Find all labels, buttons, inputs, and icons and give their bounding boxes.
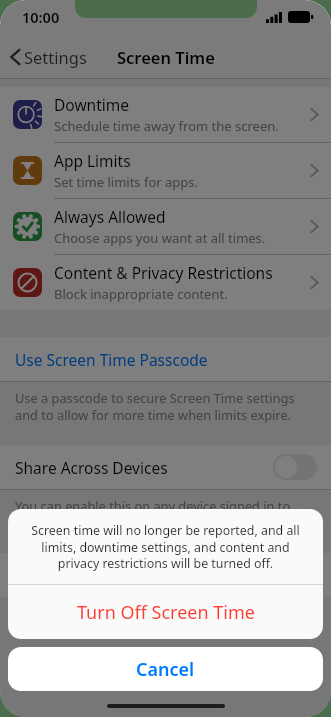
button[interactable]: Use Screen Time Passcode xyxy=(0,337,331,381)
button[interactable]: Turn Off Screen Time xyxy=(0,553,331,597)
button[interactable]: Cancel xyxy=(8,647,323,691)
staticText: Content & Privacy Restrictions xyxy=(54,262,273,283)
button[interactable]: Always Allowed xyxy=(0,199,331,255)
staticText: Cancel xyxy=(136,657,195,682)
staticText: Screen time will no longer be reported, … xyxy=(24,522,307,571)
staticText: Turn Off Screen Time xyxy=(77,600,255,625)
staticText: Set time limits for apps. xyxy=(54,173,199,191)
staticText: Schedule time away from the screen. xyxy=(54,117,279,135)
staticText: Turn Off Screen Time xyxy=(15,565,169,586)
button[interactable]: App Limits xyxy=(0,143,331,199)
staticText: Use Screen Time Passcode xyxy=(15,349,208,370)
button[interactable]: Content & Privacy Restrictions xyxy=(0,255,331,310)
button[interactable]: Settings xyxy=(7,42,90,72)
staticText: App Limits xyxy=(54,150,131,171)
staticText: Settings xyxy=(24,46,87,68)
staticText: You can enable this on any device signed… xyxy=(15,497,316,531)
button[interactable]: Downtime xyxy=(0,87,331,143)
other: Notch xyxy=(75,0,257,18)
button[interactable]: Share Across Devices xyxy=(0,445,331,489)
staticText: Use a passcode to secure Screen Time set… xyxy=(15,389,316,423)
staticText: Always Allowed xyxy=(54,206,166,227)
staticText: Block inappropriate content. xyxy=(54,285,228,303)
staticText: Screen Time xyxy=(117,46,215,68)
button[interactable]: Turn Off Screen Time xyxy=(8,585,323,639)
staticText: Downtime xyxy=(54,94,129,115)
staticText: Share Across Devices xyxy=(15,457,168,478)
staticText: 10:00 xyxy=(22,7,60,27)
staticText: Choose apps you want at all times. xyxy=(54,229,266,247)
